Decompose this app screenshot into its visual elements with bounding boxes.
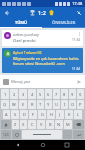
button[interactable]: SPACE bbox=[22, 130, 62, 139]
button[interactable]: 8 bbox=[61, 89, 68, 99]
staticText: F bbox=[32, 112, 35, 117]
button[interactable]: ÖNEMLİLER bbox=[42, 18, 85, 27]
staticText: W bbox=[12, 102, 16, 107]
button[interactable]: 6 bbox=[45, 89, 52, 99]
button[interactable]: R bbox=[28, 100, 36, 109]
staticText: 6 bbox=[47, 92, 50, 97]
button[interactable]: Send bbox=[75, 78, 83, 86]
staticText: 17:38 bbox=[72, 1, 83, 6]
staticText: 9 bbox=[71, 92, 74, 97]
button[interactable]: Aykut Trabzon92 bbox=[2, 48, 83, 73]
staticText: 11:34 bbox=[72, 38, 81, 42]
button[interactable]: EMOJI bbox=[12, 130, 21, 139]
staticText: E bbox=[22, 102, 25, 107]
staticText: 7 bbox=[55, 92, 58, 97]
button[interactable]: K bbox=[65, 110, 73, 119]
button[interactable]: Back bbox=[12, 140, 24, 150]
button[interactable]: 0 bbox=[77, 89, 84, 99]
button[interactable]: 9 bbox=[69, 89, 76, 99]
staticText: Q bbox=[3, 102, 7, 107]
button[interactable]: B bbox=[46, 120, 54, 129]
button[interactable]: P bbox=[77, 100, 84, 109]
staticText: 1 bbox=[4, 92, 7, 97]
staticText: M bbox=[66, 122, 70, 127]
button[interactable]: T bbox=[37, 100, 44, 109]
button[interactable]: Mesaj yaz bbox=[11, 75, 73, 88]
button[interactable]: Back bbox=[0, 7, 13, 18]
button[interactable]: F bbox=[29, 110, 37, 119]
staticText: D bbox=[23, 112, 26, 117]
staticText: I bbox=[64, 102, 66, 107]
button[interactable]: O bbox=[69, 100, 76, 109]
button[interactable]: C bbox=[28, 120, 36, 129]
button[interactable]: 4 bbox=[28, 89, 36, 99]
staticText: P bbox=[79, 102, 82, 107]
staticText: 1:2 bbox=[38, 9, 46, 16]
button[interactable]: G bbox=[38, 110, 46, 119]
button[interactable]: W bbox=[10, 100, 18, 109]
button[interactable]: TÜMÜ bbox=[0, 18, 42, 27]
button[interactable]: Recent apps bbox=[61, 140, 73, 150]
staticText: S bbox=[14, 112, 17, 117]
button[interactable]: Z bbox=[12, 120, 19, 129]
button[interactable]: H bbox=[47, 110, 55, 119]
button[interactable]: S bbox=[11, 110, 19, 119]
button[interactable]: M bbox=[64, 120, 72, 129]
staticText: 123 bbox=[3, 133, 9, 137]
button[interactable]: Mute notifications bbox=[72, 7, 85, 18]
staticText: V bbox=[40, 122, 43, 127]
staticText: K bbox=[68, 112, 71, 117]
button[interactable]: L bbox=[74, 110, 82, 119]
staticText: G bbox=[41, 112, 44, 117]
button[interactable]: U bbox=[53, 100, 60, 109]
staticText: Ozel preobi bbox=[13, 38, 36, 44]
staticText: 0 bbox=[79, 92, 82, 97]
button[interactable]: SHIFT bbox=[1, 120, 11, 129]
staticText: TÜMÜ bbox=[15, 20, 28, 25]
button[interactable]: Q bbox=[1, 100, 9, 109]
staticText: 5 bbox=[39, 92, 42, 97]
button[interactable]: V bbox=[37, 120, 45, 129]
staticText: N bbox=[57, 122, 61, 127]
button[interactable]: 7 bbox=[53, 89, 60, 99]
button[interactable]: X bbox=[20, 120, 27, 129]
button[interactable]: 3 bbox=[19, 89, 27, 99]
button[interactable]: 2 bbox=[10, 89, 18, 99]
button[interactable]: BACKSPACE bbox=[73, 120, 84, 129]
staticText: A bbox=[5, 112, 8, 117]
button[interactable]: 5 bbox=[37, 89, 44, 99]
staticText: C bbox=[31, 122, 34, 127]
staticText: B bbox=[49, 122, 52, 127]
staticText: ÖNEMLİLER bbox=[52, 20, 76, 25]
staticText: 11:34 bbox=[72, 67, 81, 71]
button[interactable]: I bbox=[61, 100, 68, 109]
staticText: O bbox=[71, 102, 75, 107]
button[interactable]: E bbox=[19, 100, 27, 109]
staticText: Mesaj yaz bbox=[11, 79, 31, 85]
button[interactable]: Attach image bbox=[2, 78, 9, 85]
button[interactable]: N bbox=[55, 120, 63, 129]
staticText: X bbox=[22, 122, 25, 127]
button[interactable]: A bbox=[3, 110, 10, 119]
staticText: . bbox=[67, 132, 69, 137]
staticText: Y bbox=[47, 102, 50, 107]
staticText: Aykut Trabzon92 bbox=[13, 50, 42, 55]
button[interactable]: More options bbox=[78, 32, 81, 36]
staticText: 2 bbox=[13, 92, 16, 97]
staticText: 3 bbox=[22, 92, 25, 97]
button[interactable]: Home bbox=[37, 140, 49, 150]
button[interactable]: J bbox=[56, 110, 64, 119]
staticText: Bilgisayarda en çok kazandıran bahis for… bbox=[13, 56, 81, 66]
staticText: U bbox=[55, 102, 58, 107]
button[interactable]: ozlem.yucelsoy bbox=[2, 30, 83, 46]
button[interactable]: 1 bbox=[1, 89, 9, 99]
button[interactable]: 123 bbox=[1, 130, 11, 139]
staticText: Z bbox=[14, 122, 17, 127]
button[interactable]: Y bbox=[45, 100, 52, 109]
staticText: H bbox=[50, 112, 53, 117]
staticText: T bbox=[39, 102, 42, 107]
staticText: 8 bbox=[63, 92, 66, 97]
button[interactable]: D bbox=[20, 110, 28, 119]
button[interactable]: ENTER bbox=[73, 130, 84, 139]
